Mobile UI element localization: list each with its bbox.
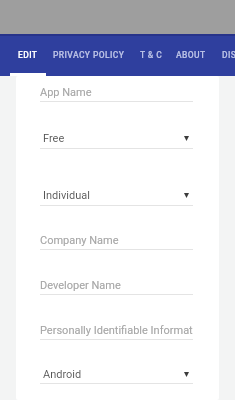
button[interactable]: DISCLAIMER [211, 34, 235, 76]
staticText: Free [43, 132, 65, 145]
staticText: DISCLAIMER [222, 50, 235, 60]
button[interactable]: EDIT [10, 34, 46, 76]
button[interactable]: Company Name [40, 206, 193, 250]
button[interactable]: PRIVACY POLICY [46, 34, 132, 76]
staticText: PRIVACY POLICY [53, 50, 125, 60]
button[interactable]: App Name [40, 76, 193, 102]
staticText: Android [43, 368, 82, 381]
staticText: Developer Name [40, 279, 121, 292]
staticText: Company Name [40, 234, 119, 247]
button[interactable]: T & C [132, 34, 170, 76]
staticText: EDIT [18, 50, 38, 60]
button[interactable]: Developer Name [40, 250, 193, 295]
staticText: Personally Identifiable Information [40, 324, 193, 337]
button[interactable]: ABOUT [170, 34, 211, 76]
button[interactable]: Personally Identifiable Information [40, 295, 193, 340]
button[interactable]: Free [40, 102, 193, 149]
button[interactable]: Individual [40, 149, 193, 206]
staticText: ABOUT [176, 50, 206, 60]
staticText: App Name [40, 86, 92, 99]
button[interactable]: Android [40, 340, 193, 384]
staticText: T & C [140, 50, 163, 60]
staticText: Individual [43, 189, 90, 202]
